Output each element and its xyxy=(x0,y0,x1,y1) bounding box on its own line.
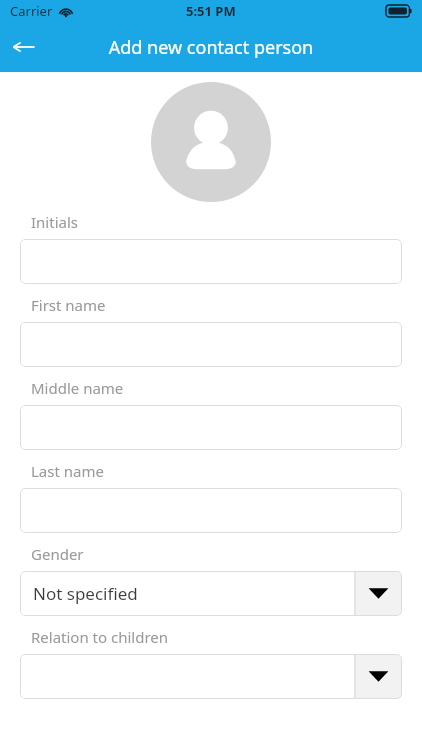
button[interactable]: Gender xyxy=(20,571,402,616)
staticText: Not specified xyxy=(33,582,138,605)
button[interactable] xyxy=(20,322,402,367)
button[interactable] xyxy=(20,239,402,284)
staticText: Add new contact person xyxy=(56,35,366,60)
button[interactable]: Relation to children xyxy=(20,654,402,699)
staticText: Initials xyxy=(31,212,78,232)
staticText: Carrier xyxy=(10,2,53,20)
staticText: First name xyxy=(31,295,106,315)
staticText: Gender xyxy=(31,544,84,564)
staticText: Relation to children xyxy=(31,627,169,647)
staticText: Middle name xyxy=(31,378,124,398)
button[interactable]: Back xyxy=(0,23,48,71)
button[interactable] xyxy=(20,405,402,450)
button[interactable] xyxy=(20,488,402,533)
button[interactable]: Contact photo xyxy=(151,82,271,202)
staticText: 5:51 PM xyxy=(186,2,236,20)
staticText: Last name xyxy=(31,461,104,481)
